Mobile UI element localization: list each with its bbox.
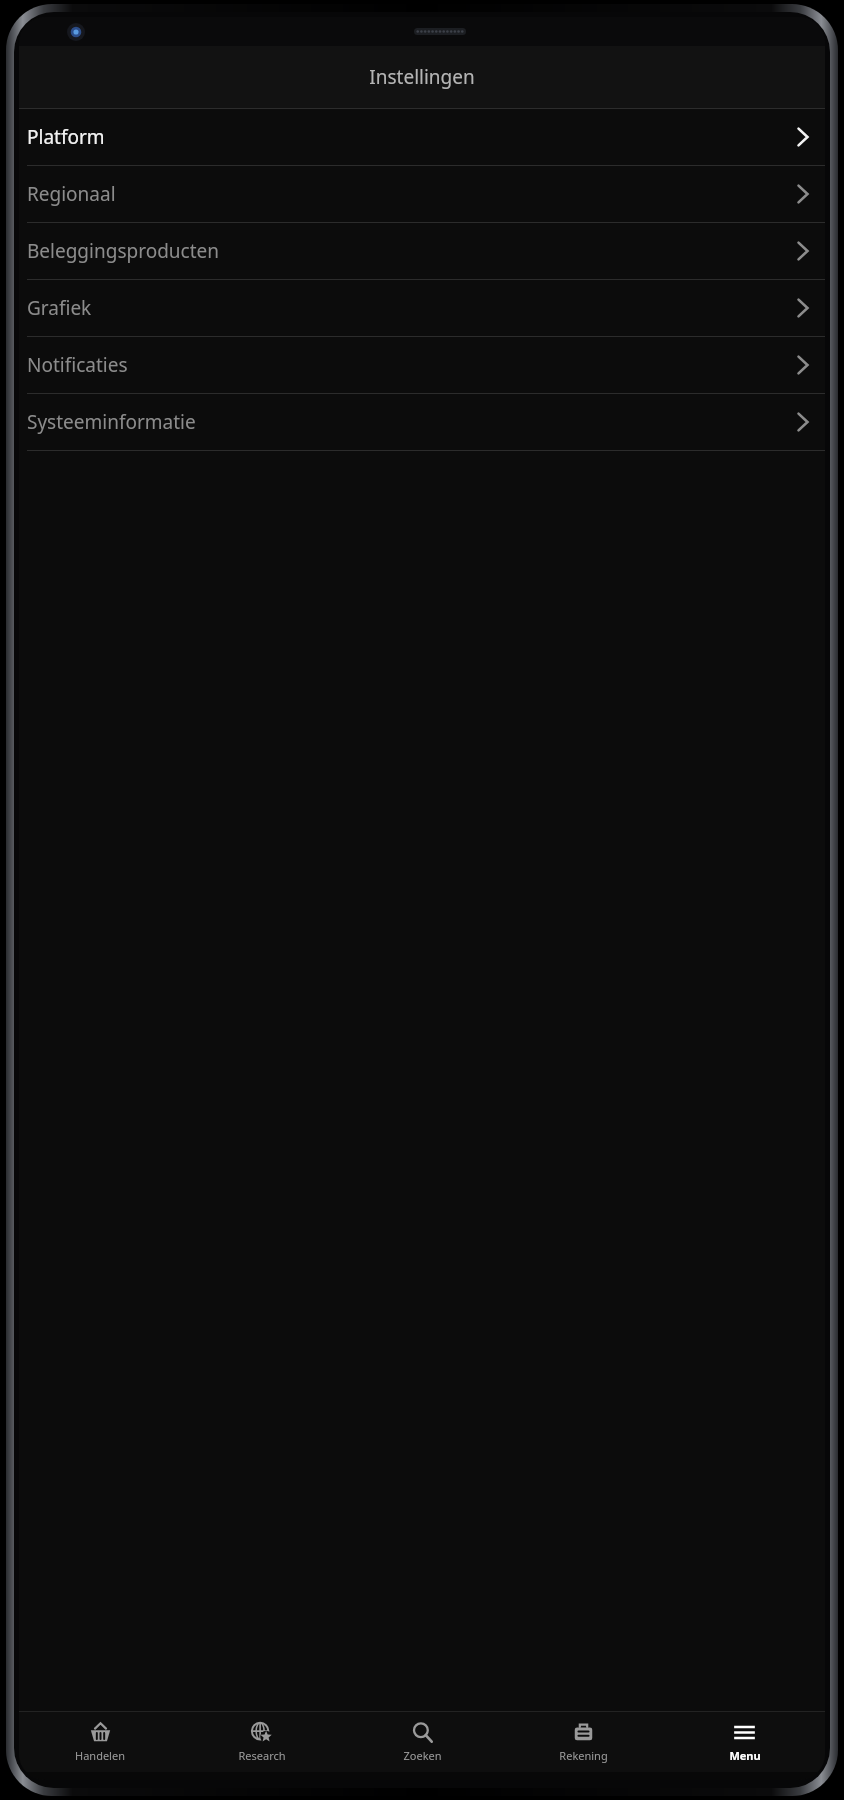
staticText: Notificaties <box>27 352 795 378</box>
button[interactable]: Beleggingsproducten <box>19 223 825 279</box>
staticText: Grafiek <box>27 295 795 321</box>
staticText: Instellingen <box>369 64 475 90</box>
button[interactable]: Platform <box>19 109 825 165</box>
staticText: Platform <box>27 124 795 150</box>
staticText: Zoeken <box>403 1748 442 1763</box>
button[interactable]: Handelen <box>19 1712 181 1772</box>
button[interactable]: Regionaal <box>19 166 825 222</box>
button[interactable]: Menu <box>664 1712 825 1772</box>
button[interactable]: Research <box>181 1712 342 1772</box>
button[interactable]: Grafiek <box>19 280 825 336</box>
button[interactable]: Systeeminformatie <box>19 394 825 450</box>
staticText: Rekening <box>559 1748 608 1763</box>
button[interactable]: Rekening <box>503 1712 664 1772</box>
button[interactable]: Zoeken <box>342 1712 503 1772</box>
staticText: Regionaal <box>27 181 795 207</box>
staticText: Systeeminformatie <box>27 409 795 435</box>
staticText: Menu <box>729 1748 761 1763</box>
staticText: Handelen <box>75 1748 125 1763</box>
button[interactable]: Notificaties <box>19 337 825 393</box>
staticText: Beleggingsproducten <box>27 238 795 264</box>
staticText: Research <box>238 1748 286 1763</box>
